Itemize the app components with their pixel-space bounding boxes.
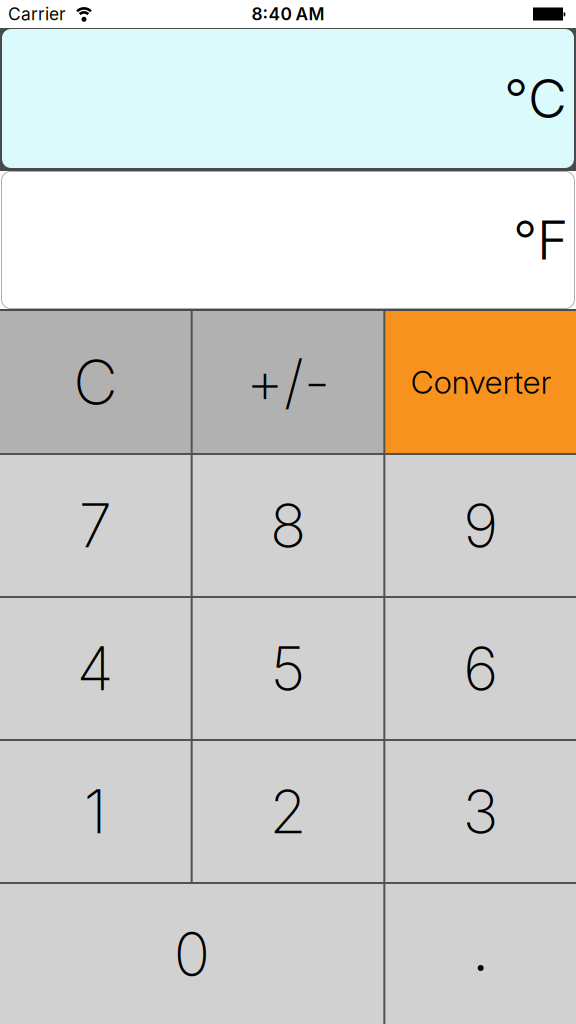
button[interactable]: 4 bbox=[0, 598, 191, 739]
staticText: °F bbox=[513, 208, 568, 272]
staticText: °C bbox=[504, 66, 567, 131]
staticText: 8 bbox=[270, 489, 306, 562]
button[interactable]: Fahrenheit input bbox=[1, 171, 575, 309]
button[interactable]: Decimal point bbox=[385, 884, 576, 1024]
button[interactable]: Converter bbox=[385, 311, 576, 453]
staticText: Converter bbox=[411, 363, 551, 401]
staticText: C bbox=[73, 345, 117, 419]
button[interactable]: 3 bbox=[385, 741, 576, 882]
staticText: 6 bbox=[463, 632, 498, 705]
button[interactable]: 5 bbox=[193, 598, 383, 739]
staticText: 2 bbox=[269, 775, 306, 848]
button[interactable]: 2 bbox=[193, 741, 383, 882]
staticText: 8:40 AM bbox=[251, 3, 324, 24]
staticText: 4 bbox=[77, 632, 114, 705]
button[interactable]: 1 bbox=[0, 741, 191, 882]
staticText: 5 bbox=[270, 632, 305, 705]
button[interactable]: 8 bbox=[193, 455, 383, 596]
staticText: 9 bbox=[463, 489, 498, 562]
button[interactable]: 7 bbox=[0, 455, 191, 596]
button[interactable]: 6 bbox=[385, 598, 576, 739]
staticText: 0 bbox=[174, 918, 210, 990]
button[interactable]: 0 bbox=[0, 884, 383, 1024]
button[interactable]: +/- bbox=[193, 311, 383, 453]
staticText: 1 bbox=[84, 775, 107, 848]
button[interactable]: Celsius input bbox=[2, 29, 574, 168]
staticText: 3 bbox=[463, 775, 499, 848]
button[interactable]: 9 bbox=[385, 455, 576, 596]
staticText: Carrier bbox=[8, 3, 66, 24]
staticText: +/- bbox=[246, 346, 330, 417]
button[interactable]: C bbox=[0, 311, 191, 453]
staticText: 7 bbox=[79, 489, 112, 562]
